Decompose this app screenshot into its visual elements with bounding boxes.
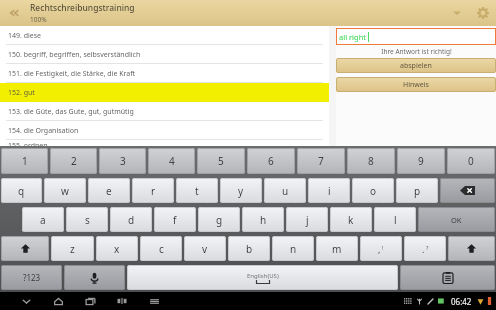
staticText: 06:42 — [451, 296, 472, 307]
button[interactable]: r — [132, 178, 174, 203]
staticText: English(US) — [247, 272, 279, 280]
button[interactable]: 3 — [99, 148, 146, 174]
staticText: Ihre Antwort ist richtig! — [381, 47, 452, 56]
button[interactable]: o — [352, 178, 394, 203]
button[interactable]: 153. die Güte, das Gute, gut, gutmütig — [0, 102, 329, 121]
staticText: d — [128, 213, 135, 227]
button[interactable]: 5 — [197, 148, 245, 174]
staticText: OK — [451, 215, 462, 225]
button[interactable]: m — [316, 236, 358, 261]
button[interactable]: q — [1, 178, 42, 203]
button[interactable]: 151. die Festigkeit, die Stärke, die Kra… — [0, 64, 329, 83]
button[interactable]: b — [228, 236, 270, 261]
staticText: z — [70, 242, 75, 256]
button[interactable]: z — [51, 236, 94, 261]
button[interactable]: h — [242, 207, 284, 232]
button[interactable]: y — [220, 178, 262, 203]
staticText: a — [40, 213, 46, 227]
staticText: j — [306, 213, 309, 227]
button[interactable]: Hinweis — [336, 77, 496, 92]
button[interactable]: , — [360, 236, 402, 261]
button[interactable]: p — [396, 178, 438, 203]
button[interactable]: n — [272, 236, 314, 261]
staticText: w — [61, 184, 69, 198]
button[interactable]: Menu — [144, 292, 164, 310]
staticText: 153. die Güte, das Gute, gut, gutmütig — [8, 107, 134, 117]
staticText: , — [378, 243, 381, 255]
button[interactable]: abspielen — [336, 58, 496, 73]
button[interactable]: 152. gut — [0, 83, 329, 102]
button[interactable]: Shift — [1, 236, 49, 261]
staticText: . — [422, 243, 425, 255]
button[interactable]: 4 — [148, 148, 195, 174]
staticText: m — [332, 242, 342, 256]
staticText: s — [85, 213, 90, 227]
button[interactable]: g — [198, 207, 240, 232]
button[interactable]: Voice input — [64, 265, 125, 290]
button[interactable]: l — [374, 207, 416, 232]
staticText: e — [106, 184, 112, 198]
staticText: c — [159, 242, 164, 256]
button[interactable]: j — [286, 207, 328, 232]
button[interactable]: Screenshot — [112, 292, 132, 310]
button[interactable]: 150. begriff, begriffen, selbsverständli… — [0, 45, 329, 64]
button[interactable]: 1 — [1, 148, 48, 174]
staticText: all right — [339, 32, 367, 42]
staticText: 1 — [22, 154, 28, 168]
button[interactable]: 8 — [347, 148, 395, 174]
button[interactable]: 9 — [397, 148, 445, 174]
staticText: 4 — [169, 154, 175, 168]
button[interactable]: f — [154, 207, 196, 232]
button[interactable]: . — [404, 236, 446, 261]
staticText: 3 — [120, 154, 126, 168]
button[interactable]: 0 — [447, 148, 495, 174]
staticText: g — [216, 213, 223, 227]
button[interactable]: Settings — [470, 0, 496, 26]
button[interactable]: t — [176, 178, 218, 203]
button[interactable]: 2 — [50, 148, 97, 174]
staticText: q — [18, 184, 25, 198]
button[interactable]: x — [96, 236, 138, 261]
button[interactable]: s — [66, 207, 108, 232]
staticText: 6 — [268, 154, 274, 168]
button[interactable]: Clipboard — [400, 265, 495, 290]
button[interactable]: d — [110, 207, 152, 232]
staticText: n — [290, 242, 297, 256]
button[interactable]: 7 — [297, 148, 345, 174]
button[interactable]: Space — [127, 265, 398, 290]
button[interactable]: u — [264, 178, 306, 203]
staticText: 151. die Festigkeit, die Stärke, die Kra… — [8, 69, 136, 79]
button[interactable]: OK — [418, 207, 495, 232]
staticText: p — [414, 184, 421, 198]
button[interactable]: Show options — [444, 0, 470, 26]
button[interactable]: Hide keyboard — [16, 292, 36, 310]
staticText: i — [328, 184, 331, 198]
staticText: t — [195, 184, 199, 198]
staticText: ! — [382, 244, 384, 251]
button[interactable]: 6 — [247, 148, 295, 174]
button[interactable]: Home — [48, 292, 68, 310]
staticText: u — [282, 184, 289, 198]
button[interactable]: 149. diese — [0, 26, 329, 45]
staticText: l — [394, 213, 397, 227]
button[interactable]: w — [44, 178, 86, 203]
button[interactable]: a — [22, 207, 64, 232]
button[interactable]: e — [88, 178, 130, 203]
button[interactable]: Back — [0, 0, 30, 26]
staticText: r — [151, 184, 156, 198]
staticText: 150. begriff, begriffen, selbsverständli… — [8, 50, 141, 60]
button[interactable]: all right — [336, 28, 496, 45]
staticText: 0 — [468, 154, 474, 168]
button[interactable]: Shift — [448, 236, 495, 261]
button[interactable]: Backspace — [440, 178, 495, 203]
button[interactable]: c — [140, 236, 182, 261]
button[interactable]: i — [308, 178, 350, 203]
button[interactable]: 154. die Organisation — [0, 121, 329, 140]
staticText: 8 — [368, 154, 374, 168]
button[interactable]: k — [330, 207, 372, 232]
button[interactable]: ?123 — [1, 265, 62, 290]
staticText: v — [202, 242, 208, 256]
staticText: y — [238, 184, 244, 198]
button[interactable]: v — [184, 236, 226, 261]
button[interactable]: Recent apps — [80, 292, 100, 310]
